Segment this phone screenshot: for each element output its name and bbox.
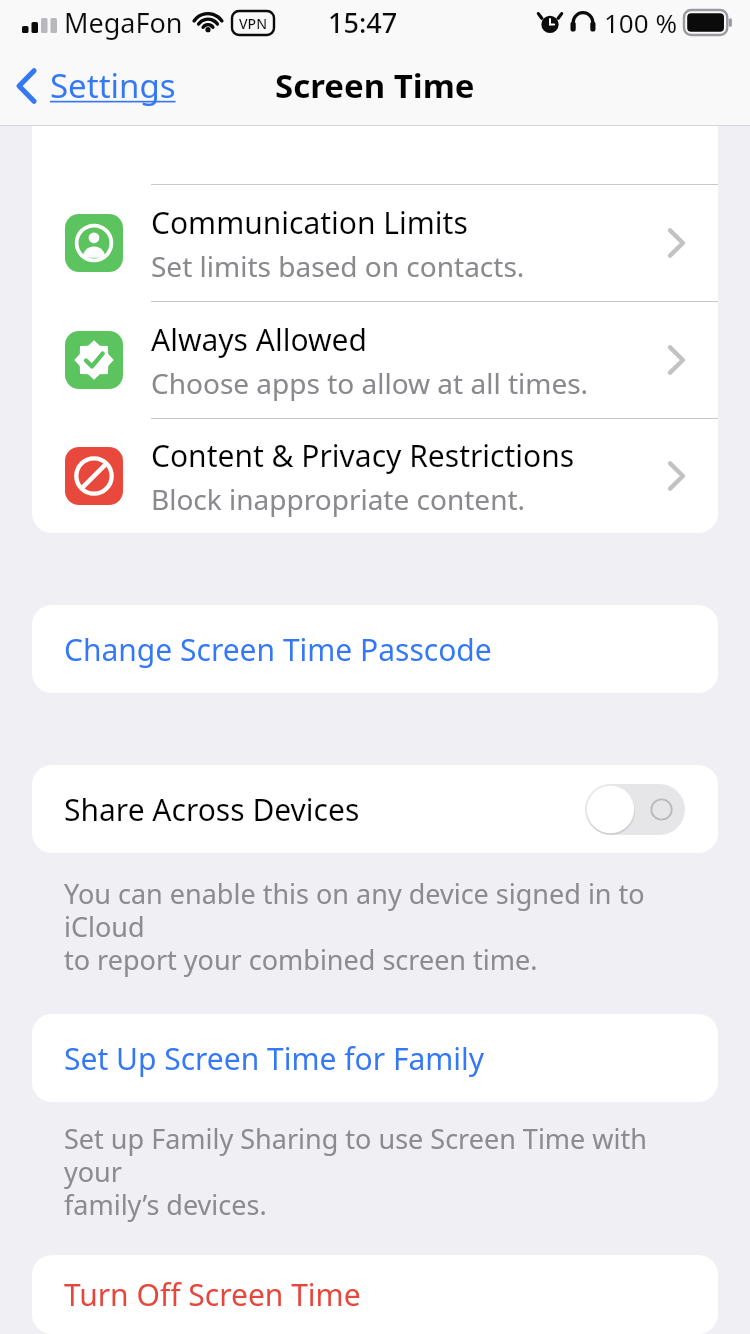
staticText: Content & Privacy Restrictions <box>151 435 575 476</box>
staticText: Choose apps to allow at all times. <box>151 364 589 402</box>
staticText: Always Allowed <box>151 319 367 360</box>
staticText: 100 % <box>604 5 677 40</box>
button[interactable]: Content & Privacy Restrictions <box>32 419 718 533</box>
button[interactable]: Turn Off Screen Time <box>32 1255 718 1334</box>
button[interactable]: Settings <box>0 55 188 116</box>
staticText: VPN <box>239 14 268 33</box>
staticText: Communication Limits <box>151 202 468 243</box>
staticText: Turn Off Screen Time <box>64 1274 361 1315</box>
staticText: You can enable this on any device signed… <box>64 875 710 978</box>
staticText: Share Across Devices <box>64 789 360 830</box>
staticText: Change Screen Time Passcode <box>64 629 492 670</box>
button[interactable]: Share Across Devices toggle, off <box>585 784 685 835</box>
staticText: Set up Family Sharing to use Screen Time… <box>64 1120 710 1223</box>
button[interactable]: Communication Limits <box>32 185 718 301</box>
button[interactable]: Always Allowed <box>32 302 718 418</box>
button[interactable]: Share Across Devices <box>32 765 718 853</box>
button[interactable]: Change Screen Time Passcode <box>32 605 718 693</box>
staticText: Set Up Screen Time for Family <box>64 1038 485 1079</box>
staticText: Settings <box>50 63 176 108</box>
staticText: MegaFon <box>64 4 183 41</box>
button[interactable]: Set Up Screen Time for Family <box>32 1014 718 1102</box>
staticText: Set limits based on contacts. <box>151 247 525 285</box>
staticText: Block inappropriate content. <box>151 480 526 518</box>
staticText: 15:47 <box>328 4 398 41</box>
staticText: Screen Time <box>275 63 475 108</box>
